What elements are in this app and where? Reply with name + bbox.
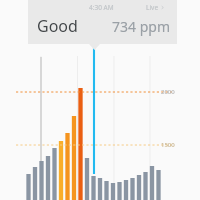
- staticText: Good: [37, 15, 78, 37]
- staticText: 734 ppm: [112, 17, 170, 36]
- staticText: Live: [146, 3, 159, 12]
- button[interactable]: 4:30 AM: [28, 0, 177, 44]
- staticText: 2000: [161, 88, 175, 96]
- staticText: 4:30 AM: [89, 3, 114, 12]
- button[interactable]: Live: [146, 3, 166, 12]
- staticText: 1500: [161, 141, 175, 149]
